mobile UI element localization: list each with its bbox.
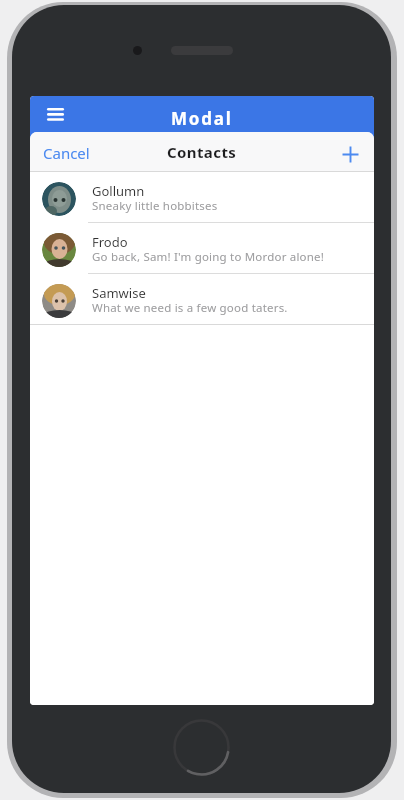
- staticText: Frodo: [92, 233, 128, 251]
- button[interactable]: Samwise: [30, 274, 374, 324]
- button[interactable]: [336, 137, 374, 166]
- staticText: Cancel: [43, 143, 90, 163]
- button[interactable]: [40, 100, 71, 128]
- staticText: Modal: [171, 107, 233, 130]
- staticText: What we need is a few good taters.: [92, 300, 288, 316]
- button[interactable]: Gollumn: [30, 172, 374, 222]
- staticText: Samwise: [92, 284, 146, 302]
- staticText: Sneaky little hobbitses: [92, 198, 218, 214]
- staticText: Gollumn: [92, 182, 145, 200]
- staticText: Go back, Sam! I'm going to Mordor alone!: [92, 249, 325, 265]
- staticText: Contacts: [167, 142, 237, 162]
- button[interactable]: Frodo: [30, 223, 374, 273]
- button[interactable]: Cancel: [30, 136, 96, 168]
